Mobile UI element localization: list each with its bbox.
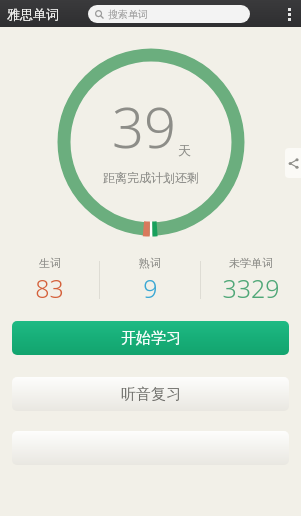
button[interactable]: 搜索单词 xyxy=(88,5,250,23)
button[interactable]: 听音复习 xyxy=(12,377,289,411)
button[interactable]: Share xyxy=(285,148,301,178)
button[interactable]: More options xyxy=(277,2,301,26)
button[interactable]: 开始学习 xyxy=(12,321,289,355)
button[interactable]: 熟词 xyxy=(100,256,200,305)
staticText: 听音复习 xyxy=(121,385,181,404)
staticText: 熟词 xyxy=(139,256,161,270)
staticText: 83 xyxy=(35,271,64,305)
staticText: 天 xyxy=(178,142,191,158)
staticText: 开始学习 xyxy=(121,329,181,348)
staticText: 3329 xyxy=(222,271,280,305)
staticText: 距离完成计划还剩 xyxy=(103,170,199,185)
staticText: 生词 xyxy=(39,256,61,270)
staticText: 39 xyxy=(112,88,176,164)
button[interactable]: 生词 xyxy=(0,256,99,305)
staticText: 9 xyxy=(143,271,158,305)
button[interactable] xyxy=(12,431,289,465)
staticText: 未学单词 xyxy=(229,256,273,270)
staticText: 搜索单词 xyxy=(108,8,148,21)
button[interactable]: 未学单词 xyxy=(201,256,301,305)
staticText: 雅思单词 xyxy=(7,6,59,22)
